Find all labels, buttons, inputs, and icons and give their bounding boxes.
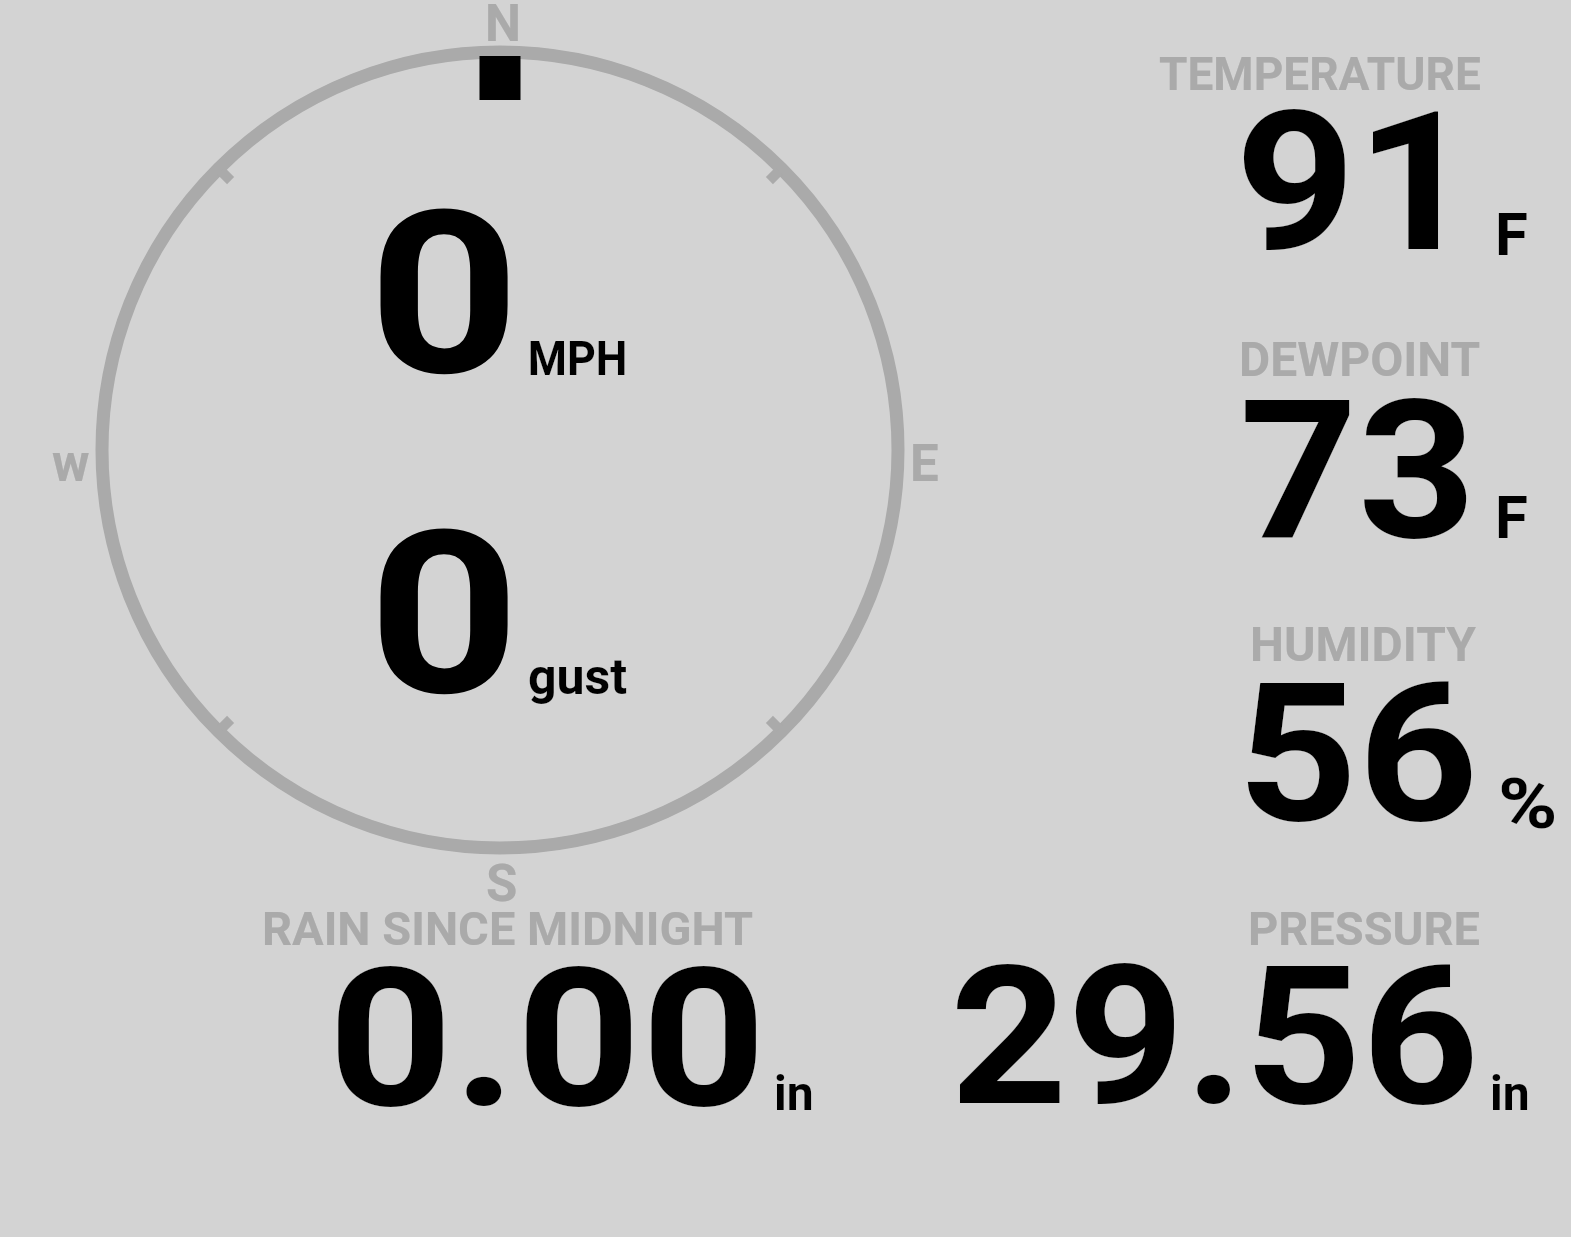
staticText: 0 <box>368 161 521 427</box>
staticText: 56 <box>1237 641 1479 867</box>
staticText: 29.56 <box>950 924 1480 1150</box>
button[interactable]: Pressure 29.56 in <box>1040 895 1540 1125</box>
staticText: % <box>1498 763 1558 845</box>
staticText: PRESSURE <box>1248 901 1480 956</box>
staticText: F <box>1495 482 1528 552</box>
staticText: F <box>1495 199 1528 269</box>
staticText: 73 <box>1239 358 1477 584</box>
button[interactable]: Dew point 73 F <box>1040 325 1540 555</box>
button[interactable]: Temperature 91 F <box>1040 40 1540 270</box>
staticText: in <box>774 1065 814 1121</box>
button[interactable]: Rain since midnight 0.00 in <box>250 895 830 1125</box>
staticText: TEMPERATURE <box>1159 47 1481 101</box>
staticText: N <box>485 0 522 54</box>
staticText: MPH <box>528 330 628 387</box>
button[interactable]: Humidity 56 percent <box>1040 610 1540 840</box>
staticText: E <box>910 434 939 494</box>
staticText: HUMIDITY <box>1250 616 1476 672</box>
staticText: S <box>486 854 518 914</box>
staticText: gust <box>528 648 628 707</box>
staticText: 0.00 <box>328 926 767 1152</box>
button[interactable]: Wind direction, 0 MPH, gusting 0 <box>100 52 900 848</box>
staticText: 0 <box>368 481 521 747</box>
staticText: 91 <box>1235 70 1477 296</box>
staticText: w <box>52 434 90 494</box>
staticText: DEWPOINT <box>1239 331 1481 387</box>
staticText: in <box>1490 1065 1530 1121</box>
staticText: RAIN SINCE MIDNIGHT <box>262 901 754 956</box>
